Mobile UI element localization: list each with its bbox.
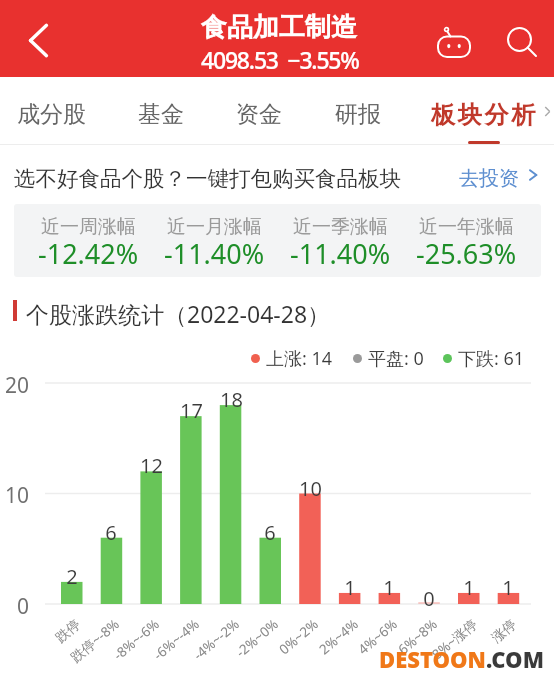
staticText: 平盘: 0	[368, 346, 424, 371]
staticText: -25.63%	[416, 235, 517, 272]
staticText: 研报	[335, 100, 381, 129]
button[interactable]: Back	[16, 18, 60, 62]
staticText: -4%~-2%	[189, 615, 243, 664]
staticText: 2%~4%	[315, 615, 362, 658]
staticText: 上涨: 14	[266, 346, 333, 371]
button[interactable]: 成分股	[7, 87, 96, 142]
button[interactable]: 研报	[325, 87, 391, 142]
staticText: 资金	[236, 100, 282, 129]
staticText: 近一月涨幅	[167, 215, 262, 239]
staticText: 近一周涨幅	[41, 215, 136, 239]
staticText: 成分股	[17, 100, 86, 129]
staticText: 0	[17, 592, 30, 620]
staticText: 1	[463, 574, 475, 601]
staticText: 板块分析	[431, 100, 539, 130]
button[interactable]: 资金	[226, 87, 292, 142]
staticText: -8%~-6%	[109, 615, 163, 664]
staticText: DESTOON	[379, 644, 486, 674]
staticText: 近一季涨幅	[293, 215, 388, 239]
staticText: 跌停~-8%	[66, 615, 123, 667]
staticText: 10	[5, 481, 30, 509]
staticText: 18	[220, 386, 243, 413]
staticText: 近一年涨幅	[419, 215, 514, 239]
button[interactable]: 板块分析	[421, 87, 549, 142]
button[interactable]: Assistant robot	[426, 16, 482, 70]
staticText: 下跌: 61	[458, 346, 525, 371]
staticText: 0	[423, 585, 435, 612]
staticText: 6	[105, 519, 117, 546]
staticText: 0%~2%	[275, 615, 322, 658]
staticText: 食品加工制造	[201, 11, 357, 44]
staticText: 涨停	[488, 616, 520, 646]
staticText: 个股涨跌统计（2022-04-28）	[26, 298, 331, 329]
staticText: 4098.53 −3.55%	[201, 44, 359, 75]
staticText: 1	[502, 574, 514, 601]
staticText: -11.40%	[290, 235, 391, 272]
staticText: 6	[264, 519, 276, 546]
staticText: 4%~6%	[354, 615, 401, 658]
button[interactable]: 基金	[128, 87, 194, 142]
staticText: -11.40%	[164, 235, 265, 272]
button[interactable]: Search	[495, 17, 549, 71]
staticText: -6%~-4%	[149, 615, 203, 664]
staticText: 8%~涨停	[428, 615, 481, 664]
staticText: 17	[180, 397, 203, 424]
staticText: 12	[140, 452, 163, 479]
staticText: 1	[344, 574, 356, 601]
staticText: -2%~0%	[232, 615, 282, 661]
staticText: 去投资	[459, 166, 519, 191]
staticText: 6%~8%	[394, 615, 441, 658]
staticText: 20	[5, 371, 30, 399]
staticText: 基金	[138, 100, 184, 129]
staticText: 跌停	[52, 616, 84, 646]
staticText: .COM	[486, 644, 544, 674]
staticText: -12.42%	[38, 235, 139, 272]
staticText: 选不好食品个股？一键打包购买食品板块	[14, 165, 401, 192]
staticText: 2	[66, 563, 78, 590]
staticText: 10	[299, 475, 322, 502]
staticText: 1	[383, 574, 395, 601]
button[interactable]: 选不好食品个股？一键打包购买食品板块	[0, 145, 554, 203]
